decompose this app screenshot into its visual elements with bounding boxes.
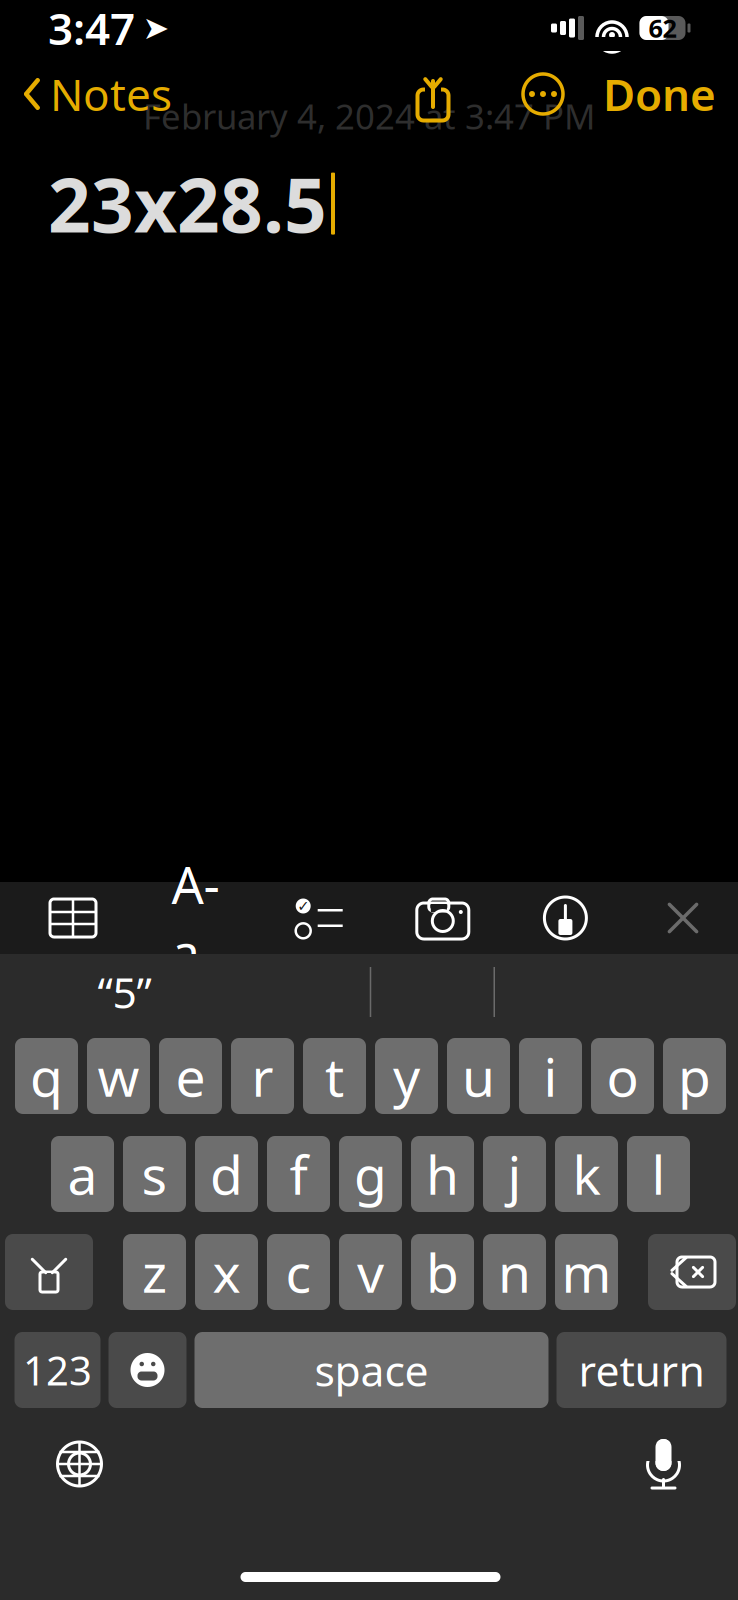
staticText: z (142, 1237, 167, 1307)
button[interactable]: 123 (14, 1332, 100, 1408)
staticText: y (393, 1041, 420, 1111)
button[interactable]: More (517, 72, 569, 116)
button[interactable]: Dictation (641, 1436, 685, 1492)
staticText: p (678, 1041, 711, 1111)
button[interactable]: Table (48, 897, 98, 939)
staticText: v (357, 1237, 384, 1307)
staticText: c (285, 1237, 311, 1307)
staticText: q (30, 1041, 63, 1111)
staticText: Aa (172, 851, 220, 985)
staticText: t (325, 1041, 344, 1111)
staticText: x (212, 1237, 240, 1307)
button[interactable]: d (195, 1136, 258, 1212)
button[interactable]: l (627, 1136, 690, 1212)
button[interactable]: return (556, 1332, 726, 1408)
button[interactable]: t (303, 1038, 366, 1114)
button[interactable]: r (231, 1038, 294, 1114)
button[interactable]: h (411, 1136, 474, 1212)
button[interactable]: f (267, 1136, 330, 1212)
button[interactable]: y (375, 1038, 438, 1114)
staticText: o (606, 1041, 638, 1111)
staticText: Notes (50, 65, 172, 123)
staticText: u (462, 1041, 495, 1111)
staticText: Done (603, 65, 716, 123)
staticText: “5” (97, 964, 151, 1020)
button[interactable] (248, 954, 492, 1030)
button[interactable]: p (663, 1038, 726, 1114)
button[interactable]: Shift (5, 1234, 93, 1310)
button[interactable]: w (87, 1038, 150, 1114)
staticText: February 4, 2024 at 3:47 PM (143, 93, 595, 139)
button[interactable]: v (339, 1234, 402, 1310)
staticText: b (426, 1237, 459, 1307)
staticText: s (141, 1139, 167, 1209)
button[interactable]: q (15, 1038, 78, 1114)
button[interactable]: Camera (415, 895, 471, 941)
staticText: h (426, 1139, 459, 1209)
button[interactable]: j (483, 1136, 546, 1212)
button[interactable]: a (51, 1136, 114, 1212)
button[interactable]: Close (660, 895, 706, 941)
button[interactable]: x (195, 1234, 258, 1310)
staticText: k (572, 1139, 600, 1209)
button[interactable]: Switch keyboard (55, 1440, 103, 1488)
staticText: d (210, 1139, 243, 1209)
button[interactable]: Done (603, 57, 716, 131)
staticText: a (67, 1139, 97, 1209)
staticText: f (289, 1139, 307, 1209)
button[interactable]: e (159, 1038, 222, 1114)
staticText: 123 (23, 1343, 92, 1396)
button[interactable]: Markup (540, 893, 590, 943)
staticText: ➤ (142, 10, 169, 46)
button[interactable]: u (447, 1038, 510, 1114)
staticText: ✓ (297, 898, 309, 914)
button[interactable]: Emoji (108, 1332, 186, 1408)
button[interactable]: space (194, 1332, 548, 1408)
staticText: i (543, 1041, 557, 1111)
button[interactable]: n (483, 1234, 546, 1310)
staticText: l (651, 1139, 665, 1209)
button[interactable]: i (519, 1038, 582, 1114)
staticText: g (354, 1139, 387, 1209)
button[interactable]: z (123, 1234, 186, 1310)
button[interactable]: k (555, 1136, 618, 1212)
button[interactable]: Notes (22, 57, 172, 131)
button[interactable] (494, 954, 738, 1030)
button[interactable]: g (339, 1136, 402, 1212)
button[interactable]: b (411, 1234, 474, 1310)
button[interactable]: Share (405, 71, 461, 117)
button[interactable]: o (591, 1038, 654, 1114)
staticText: w (97, 1041, 139, 1111)
button[interactable]: Format (168, 897, 224, 939)
staticText: space (314, 1342, 428, 1398)
staticText: e (175, 1041, 205, 1111)
staticText: 62 (648, 11, 676, 45)
staticText: n (498, 1237, 531, 1307)
button[interactable]: Delete (648, 1234, 736, 1310)
staticText: return (578, 1342, 704, 1398)
staticText: j (507, 1139, 521, 1209)
staticText: 23x28.5 (48, 154, 327, 253)
button[interactable]: “5” (1, 954, 247, 1030)
staticText: r (251, 1041, 273, 1111)
staticText: m (561, 1237, 611, 1307)
staticText: 3:47 (48, 0, 135, 57)
button[interactable]: Checklist (293, 897, 345, 939)
button[interactable]: s (123, 1136, 186, 1212)
button[interactable]: m (555, 1234, 618, 1310)
button[interactable]: c (267, 1234, 330, 1310)
